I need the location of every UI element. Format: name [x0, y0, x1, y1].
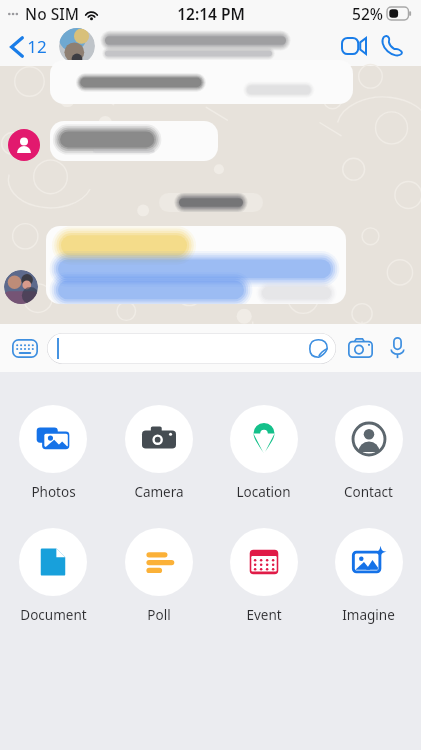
staticText: Camera	[134, 483, 184, 501]
button[interactable]: Voice message	[383, 334, 411, 362]
button[interactable]	[105, 35, 331, 57]
staticText: 52%	[352, 3, 383, 24]
staticText: Document	[20, 606, 87, 624]
button[interactable]: Voice call	[375, 29, 409, 63]
button[interactable]: Contact avatar	[8, 129, 40, 161]
staticText: Event	[246, 606, 282, 624]
staticText: 12	[27, 35, 47, 58]
staticText: Contact	[344, 483, 393, 501]
button[interactable]: Location	[211, 403, 316, 503]
button[interactable]: Camera	[106, 403, 211, 503]
button[interactable]: Contact	[316, 403, 421, 503]
button[interactable]	[50, 60, 353, 104]
button[interactable]: Document	[0, 526, 106, 626]
button[interactable]: Photos	[0, 403, 106, 503]
button[interactable]: Imagine	[316, 526, 421, 626]
button[interactable]: Back to chats, 12 unread	[6, 35, 51, 58]
staticText: Imagine	[342, 606, 395, 624]
staticText: Photos	[31, 483, 76, 501]
button[interactable]	[50, 121, 218, 161]
button[interactable]: Event	[211, 526, 316, 626]
button[interactable]: Keyboard	[10, 333, 40, 363]
button[interactable]: Sender avatar	[4, 270, 38, 304]
button[interactable]: Video call	[337, 29, 371, 63]
button[interactable]: Stickers	[308, 338, 329, 359]
button[interactable]	[46, 226, 346, 304]
staticText: No SIM	[25, 3, 79, 24]
staticText: 12:14 PM	[177, 3, 245, 24]
button[interactable]: Camera	[345, 333, 375, 363]
button[interactable]: Stickers	[47, 333, 336, 364]
button[interactable]	[59, 28, 95, 64]
button[interactable]: Poll	[106, 526, 211, 626]
staticText: Location	[236, 483, 291, 501]
staticText: Poll	[147, 606, 171, 624]
